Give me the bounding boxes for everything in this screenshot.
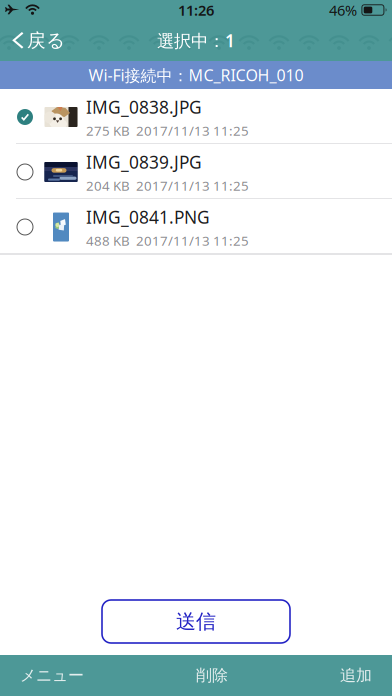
staticText: Wi-Fi接続中：MC_RICOH_010: [88, 64, 303, 86]
button[interactable]: IMG_0839.JPG: [0, 144, 392, 199]
staticText: IMG_0839.JPG: [86, 151, 202, 174]
button[interactable]: 削除: [184, 655, 240, 696]
staticText: 追加: [340, 666, 372, 685]
staticText: 204 KB 2017/11/13 11:25: [86, 177, 249, 194]
button[interactable]: 送信: [102, 600, 290, 643]
staticText: 戻る: [27, 29, 65, 52]
staticText: 送信: [176, 609, 216, 634]
staticText: IMG_0838.JPG: [86, 96, 202, 119]
staticText: 46%: [329, 0, 357, 20]
button[interactable]: IMG_0838.JPG: [0, 89, 392, 144]
staticText: メニュー: [20, 666, 84, 685]
staticText: 488 KB 2017/11/13 11:25: [86, 232, 249, 249]
button[interactable]: 戻る: [0, 20, 75, 61]
staticText: IMG_0841.PNG: [86, 206, 210, 229]
staticText: 11:26: [178, 0, 214, 20]
button[interactable]: 追加: [328, 655, 384, 696]
staticText: 選択中：1: [157, 29, 235, 52]
staticText: 275 KB 2017/11/13 11:25: [86, 122, 249, 139]
button[interactable]: IMG_0841.PNG: [0, 199, 392, 254]
button[interactable]: メニュー: [8, 655, 96, 696]
staticText: 削除: [196, 666, 228, 685]
